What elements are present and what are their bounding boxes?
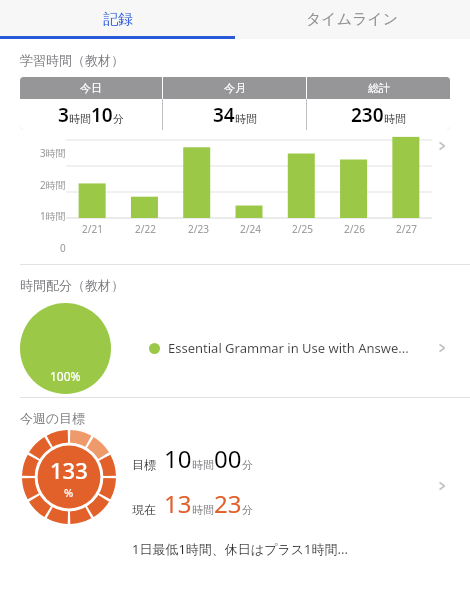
staticText: 10 [91,102,113,128]
other: 目標の詳細 [430,474,454,498]
staticText: タイムライン [306,10,399,29]
staticText: 今日 [80,81,102,95]
staticText: 時間 [192,458,214,472]
other: 教材の詳細 [430,336,454,360]
staticText: 総計 [368,81,390,95]
staticText: 13 [164,487,192,520]
staticText: 学習時間（教材） [20,52,124,68]
staticText: 2/26 [344,222,365,236]
staticText: 1日最低1時間、休日はプラス1時間... [132,540,348,558]
other: 詳細を見る [430,134,454,158]
staticText: 時間 [192,503,214,517]
staticText: 2/21 [82,222,103,236]
staticText: 10 [164,442,192,475]
staticText: 2/22 [135,222,156,236]
staticText: 00 [214,442,242,475]
button[interactable]: 100% [0,299,470,397]
staticText: 3時間 [40,146,66,160]
staticText: 今月 [224,81,246,95]
staticText: 2時間 [40,178,66,192]
staticText: 2/24 [240,222,261,236]
staticText: 1時間 [40,209,66,223]
staticText: 分 [242,503,253,517]
button[interactable]: 133 [0,430,470,558]
staticText: Essential Grammar in Use with Answe... [168,339,430,357]
staticText: 2/25 [292,222,313,236]
staticText: 2/27 [396,222,417,236]
staticText: 230 [351,102,384,128]
staticText: 時間 [69,112,91,126]
staticText: 2/23 [188,222,209,236]
button[interactable]: 3時間 [0,130,470,260]
staticText: 時間配分（教材） [20,277,124,293]
staticText: 分 [113,112,124,126]
staticText: 34 [213,102,235,128]
staticText: 今週の目標 [20,410,86,426]
staticText: 時間 [235,112,257,126]
staticText: 3 [58,102,69,128]
staticText: 時間 [384,112,406,126]
staticText: 目標 [132,457,156,472]
button[interactable]: 記録 [0,0,235,39]
staticText: % [64,485,74,500]
staticText: 133 [50,455,88,485]
button[interactable]: タイムライン [235,0,470,39]
staticText: 分 [242,458,253,472]
staticText: 0 [60,241,66,255]
staticText: 現在 [132,502,156,517]
staticText: 100% [50,368,81,384]
staticText: 23 [214,487,242,520]
staticText: 記録 [103,10,133,29]
